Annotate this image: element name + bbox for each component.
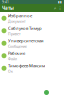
staticText: Рабочие [8, 50, 25, 56]
staticText: 9:41 [2, 0, 9, 4]
staticText: Тимофеев Максим [8, 63, 45, 68]
staticText: Университетская [8, 38, 43, 43]
staticText: Саблуков Тимур [8, 25, 42, 31]
staticText: Чаты [2, 5, 14, 11]
staticText: Документ [8, 19, 26, 24]
staticText: Сообщение [8, 44, 27, 49]
staticText: ▮▮ [58, 0, 62, 4]
staticText: Привет [8, 31, 21, 36]
staticText: Файл [8, 56, 17, 61]
staticText: Избранное [8, 13, 32, 18]
staticText: Ок [8, 69, 13, 74]
staticText: ⌕ ⋮ [54, 6, 62, 10]
